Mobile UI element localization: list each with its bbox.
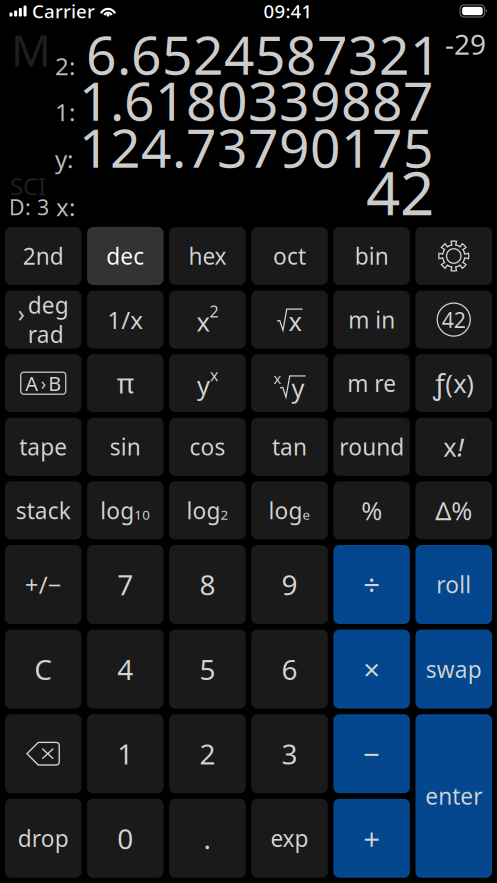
staticText: 5 — [199, 650, 215, 688]
staticText: log — [100, 495, 134, 525]
button[interactable]: − — [333, 714, 410, 793]
staticText: y — [197, 368, 210, 402]
button[interactable]: x factorial — [415, 418, 492, 476]
button[interactable]: stack — [5, 481, 81, 539]
button[interactable]: y to the power x — [169, 354, 246, 412]
staticText: 09:41 — [263, 0, 312, 23]
button[interactable]: + — [333, 799, 410, 878]
staticText: tape — [19, 432, 67, 462]
button[interactable]: 2 — [169, 714, 246, 793]
staticText: 42 — [366, 152, 434, 232]
staticText: rad — [28, 319, 64, 349]
staticText: bin — [355, 241, 389, 271]
button[interactable]: ÷ — [333, 545, 410, 624]
button[interactable]: log base 10 — [87, 481, 164, 539]
button[interactable]: enter — [415, 714, 492, 878]
button[interactable]: 2nd — [5, 227, 81, 285]
staticText: tan — [272, 432, 307, 462]
button[interactable]: tape — [5, 418, 81, 476]
button[interactable]: +/− — [5, 545, 81, 624]
button[interactable]: cos — [169, 418, 246, 476]
button[interactable]: hex — [169, 227, 246, 285]
staticText: y — [291, 371, 304, 405]
button[interactable]: 4 — [87, 630, 164, 709]
staticText: m in — [348, 304, 395, 335]
button[interactable]: square root of x — [251, 291, 328, 349]
button[interactable]: 42 constant — [415, 291, 492, 349]
button[interactable]: 3 — [251, 714, 328, 793]
staticText: y: — [55, 143, 73, 175]
button[interactable]: Settings — [415, 227, 492, 285]
staticText: x: — [56, 191, 75, 223]
button[interactable]: m in — [333, 291, 410, 349]
button[interactable]: . — [169, 799, 246, 878]
button[interactable]: exp — [251, 799, 328, 878]
button[interactable]: tan — [251, 418, 328, 476]
staticText: Carrier — [32, 0, 95, 23]
staticText: A — [25, 370, 38, 396]
staticText: SCI — [10, 170, 46, 202]
button[interactable]: 9 — [251, 545, 328, 624]
staticText: 42 — [442, 305, 466, 334]
staticText: 2: — [55, 50, 75, 82]
button[interactable]: log base e — [251, 481, 328, 539]
staticText: x — [210, 364, 218, 386]
staticText: sin — [110, 432, 141, 462]
button[interactable]: x to the power 2 — [169, 291, 246, 349]
button[interactable]: round — [333, 418, 410, 476]
button[interactable]: 6 — [251, 630, 328, 709]
button[interactable]: sin — [87, 418, 164, 476]
staticText: 1/x — [107, 304, 143, 336]
button[interactable]: bin — [333, 227, 410, 285]
button[interactable]: 7 — [87, 545, 164, 624]
staticText: 10 — [134, 506, 150, 523]
button[interactable]: Backspace — [5, 714, 81, 793]
staticText: dec — [106, 241, 144, 271]
staticText: drop — [18, 823, 69, 853]
staticText: enter — [425, 781, 482, 811]
staticText: 1 — [117, 735, 133, 772]
staticText: ƒ — [433, 365, 445, 402]
button[interactable]: roll — [415, 545, 492, 624]
button[interactable]: dec — [87, 227, 164, 285]
staticText: 2nd — [23, 241, 64, 271]
button[interactable]: drop — [5, 799, 81, 878]
staticText: › — [18, 298, 25, 328]
button[interactable]: log base 2 — [169, 481, 246, 539]
staticText: (x) — [445, 366, 474, 400]
staticText: 6 — [281, 650, 297, 688]
button[interactable]: Δ% — [415, 481, 492, 539]
button[interactable]: 5 — [169, 630, 246, 709]
button[interactable]: 1 — [87, 714, 164, 793]
button[interactable]: x root of y — [251, 354, 328, 412]
staticText: M — [11, 20, 51, 79]
staticText: C — [34, 650, 52, 688]
staticText: x — [443, 430, 456, 464]
button[interactable]: 1/x — [87, 291, 164, 349]
button[interactable]: m re — [333, 354, 410, 412]
button[interactable]: Convert A to B — [5, 354, 81, 412]
button[interactable]: 0 — [87, 799, 164, 878]
staticText: 6.6524587321 — [86, 19, 441, 89]
staticText: x — [288, 304, 301, 338]
staticText: 8 — [199, 566, 215, 603]
staticText: 2 — [209, 301, 218, 322]
staticText: hex — [188, 241, 226, 271]
button[interactable]: f of x — [415, 354, 492, 412]
button[interactable]: oct — [251, 227, 328, 285]
button[interactable]: swap — [415, 630, 492, 709]
staticText: π — [117, 365, 134, 401]
staticText: exp — [270, 823, 308, 853]
staticText: log — [268, 495, 302, 525]
button[interactable]: 8 — [169, 545, 246, 624]
button[interactable]: π — [87, 354, 164, 412]
staticText: deg — [28, 290, 69, 320]
staticText: +/− — [25, 569, 62, 600]
staticText: ! — [457, 430, 464, 464]
staticText: x — [196, 305, 209, 338]
button[interactable]: Angle mode degrees radians — [5, 291, 81, 349]
staticText: e — [302, 506, 310, 523]
button[interactable]: C — [5, 630, 81, 709]
button[interactable]: × — [333, 630, 410, 709]
button[interactable]: % — [333, 481, 410, 539]
